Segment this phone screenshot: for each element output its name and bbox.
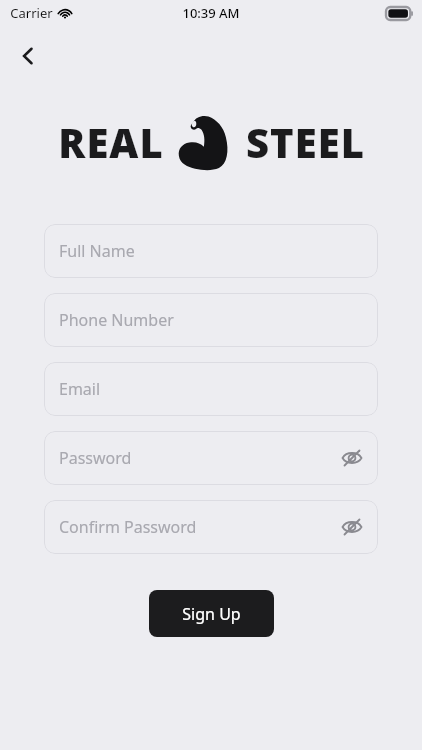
staticText: 10:39 AM xyxy=(182,4,240,22)
staticText: Password xyxy=(59,447,132,469)
staticText: Sign Up xyxy=(182,603,241,625)
staticText: Email xyxy=(59,378,101,400)
button[interactable]: Show password xyxy=(338,513,366,541)
button[interactable]: Sign Up xyxy=(149,590,274,637)
button[interactable]: Confirm Password xyxy=(44,500,378,554)
staticText: Phone Number xyxy=(59,309,174,331)
button[interactable]: Full Name xyxy=(44,224,378,278)
button[interactable]: Back xyxy=(8,36,48,76)
staticText: Full Name xyxy=(59,240,135,262)
button[interactable]: Password xyxy=(44,431,378,485)
staticText: Confirm Password xyxy=(59,516,197,538)
staticText: STEEL xyxy=(246,115,365,169)
staticText: Carrier xyxy=(10,4,53,22)
staticText: REAL xyxy=(58,115,164,169)
button[interactable]: Email xyxy=(44,362,378,416)
button[interactable]: Phone Number xyxy=(44,293,378,347)
button[interactable]: Show password xyxy=(338,444,366,472)
